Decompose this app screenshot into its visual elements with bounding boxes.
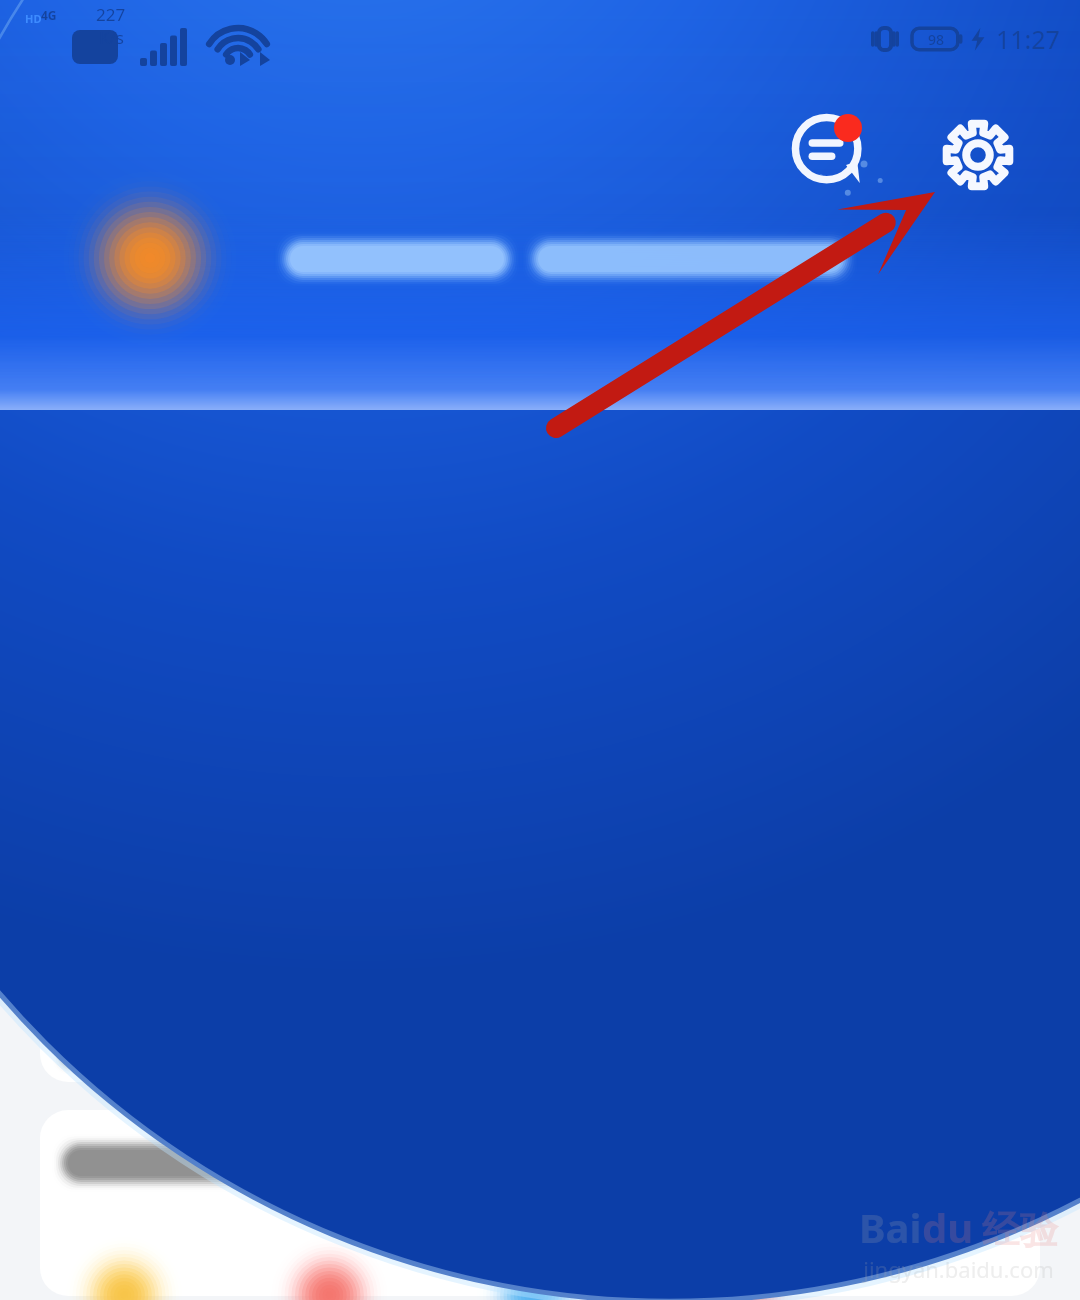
staticText: HD bbox=[25, 11, 42, 26]
staticText: K/s bbox=[99, 26, 124, 49]
staticText: jingyan.baidu.com bbox=[863, 1254, 1054, 1284]
staticText: Bai bbox=[859, 1200, 922, 1254]
staticText: 经验 bbox=[982, 1206, 1058, 1254]
staticText: 98 bbox=[928, 30, 945, 49]
staticText: 227 bbox=[96, 3, 126, 26]
staticText: 11:27 bbox=[996, 22, 1060, 56]
staticText: 4G bbox=[41, 7, 57, 23]
staticText: du bbox=[922, 1200, 974, 1254]
button[interactable]: Messages bbox=[790, 112, 868, 190]
button[interactable]: Settings bbox=[940, 117, 1016, 193]
